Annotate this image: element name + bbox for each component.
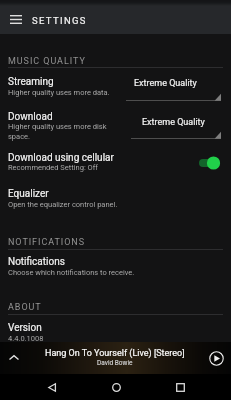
button[interactable]: Home	[84, 374, 148, 400]
staticText: MUSIC QUALITY	[8, 56, 86, 67]
staticText: Recommended Setting: Off	[8, 163, 194, 172]
staticText: David Bowie	[97, 359, 133, 367]
staticText: Streaming	[8, 76, 54, 88]
staticText: ABOUT	[8, 302, 42, 313]
staticText: Extreme Quality	[142, 117, 205, 128]
button[interactable]: Expand now playing	[0, 342, 231, 374]
staticText: NOTIFICATIONS	[8, 237, 86, 248]
button[interactable]	[0, 72, 231, 99]
staticText: Choose which notifications to receive.	[8, 268, 223, 277]
staticText: Higher quality uses more disk space.	[8, 122, 124, 141]
staticText: Download using cellular	[8, 152, 114, 164]
staticText: 4.4.0.1008	[8, 334, 223, 343]
staticText: Download	[8, 111, 53, 123]
staticText: Higher quality uses more data.	[8, 88, 124, 97]
button[interactable]	[0, 107, 231, 144]
button[interactable]	[0, 251, 231, 279]
button[interactable]: Toggle download using cellular	[196, 152, 224, 174]
button[interactable]: Recent apps	[148, 374, 212, 400]
button[interactable]	[0, 148, 231, 176]
button[interactable]: Open navigation menu	[0, 6, 32, 34]
button[interactable]: Quality: Extreme Quality	[126, 82, 221, 106]
button[interactable]: Back	[20, 374, 84, 400]
button[interactable]	[0, 184, 231, 212]
staticText: Open the equalizer control panel.	[8, 200, 223, 209]
staticText: Version	[8, 322, 42, 334]
staticText: Notifications	[8, 256, 65, 268]
staticText: Hang On To Yourself (Live) [Stereo]	[45, 348, 185, 359]
staticText: Equalizer	[8, 188, 49, 200]
button[interactable]: Expand now playing	[0, 342, 27, 374]
staticText: SETTINGS	[32, 15, 87, 26]
button[interactable]	[0, 318, 231, 346]
button[interactable]: Play	[202, 342, 231, 374]
button[interactable]: Quality: Extreme Quality	[131, 120, 221, 144]
staticText: Extreme Quality	[134, 78, 197, 89]
